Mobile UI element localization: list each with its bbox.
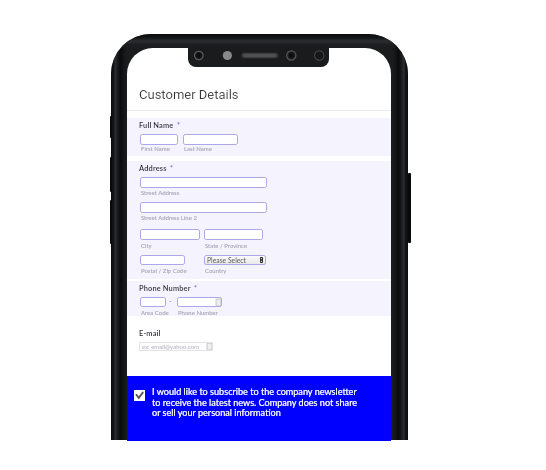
button[interactable]: ex: email@yahoo.com — [139, 342, 213, 351]
button[interactable]: Subscribe to newsletter checkbox — [134, 390, 145, 401]
staticText: * — [170, 164, 173, 172]
staticText: Country — [205, 267, 227, 274]
staticText: City — [141, 242, 152, 249]
staticText: I would like to subscribe to the company… — [152, 386, 358, 417]
button[interactable] — [183, 134, 238, 145]
button[interactable] — [140, 134, 178, 145]
staticText: Area Code — [141, 309, 169, 316]
staticText: * — [194, 284, 197, 292]
staticText: Street Address Line 2 — [141, 214, 197, 221]
staticText: First Name — [141, 145, 170, 152]
staticText: - — [169, 297, 172, 305]
button[interactable] — [140, 177, 267, 188]
staticText: E-mail — [139, 329, 161, 338]
staticText: Please Select — [207, 256, 247, 264]
button[interactable] — [140, 255, 185, 265]
staticText: ex: email@yahoo.com — [142, 343, 199, 350]
staticText: Postal / Zip Code — [141, 267, 187, 274]
staticText: Address — [139, 164, 167, 173]
staticText: Full Name — [139, 121, 174, 130]
button[interactable] — [140, 229, 200, 240]
staticText: Customer Details — [139, 87, 239, 102]
staticText: Phone Number — [139, 284, 191, 293]
staticText: Last Name — [184, 145, 212, 152]
button[interactable] — [140, 297, 166, 307]
button[interactable] — [204, 229, 263, 240]
button[interactable] — [140, 202, 267, 213]
button[interactable]: Please Select — [204, 255, 266, 265]
button[interactable] — [177, 297, 222, 307]
staticText: State / Province — [205, 242, 248, 249]
staticText: Street Address — [141, 189, 180, 196]
staticText: * — [177, 121, 180, 129]
staticText: Phone Number — [178, 309, 218, 316]
